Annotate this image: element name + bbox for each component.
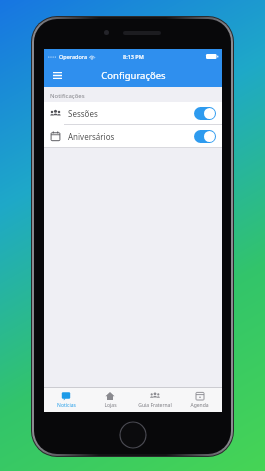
staticText: Operadora (59, 53, 87, 60)
button[interactable]: Notícias (44, 388, 88, 412)
button[interactable]: Menu (49, 67, 65, 83)
button[interactable]: Sessões (44, 102, 222, 124)
staticText: Guia Fraternal (138, 402, 172, 409)
staticText: Configurações (101, 69, 166, 82)
button[interactable]: Toggle (194, 130, 216, 143)
staticText: Notícias (57, 402, 76, 409)
button[interactable]: Aniversários (44, 125, 222, 147)
button[interactable]: Lojas (88, 388, 132, 412)
button[interactable]: Agenda (177, 388, 222, 412)
staticText: Lojas (104, 402, 117, 409)
staticText: Sessões (68, 108, 98, 119)
button[interactable]: Toggle (194, 107, 216, 120)
staticText: Notificações (50, 92, 85, 100)
staticText: Aniversários (68, 131, 115, 142)
staticText: Agenda (190, 402, 209, 409)
staticText: 8:13 PM (123, 53, 144, 60)
button[interactable]: Guia Fraternal (132, 388, 177, 412)
